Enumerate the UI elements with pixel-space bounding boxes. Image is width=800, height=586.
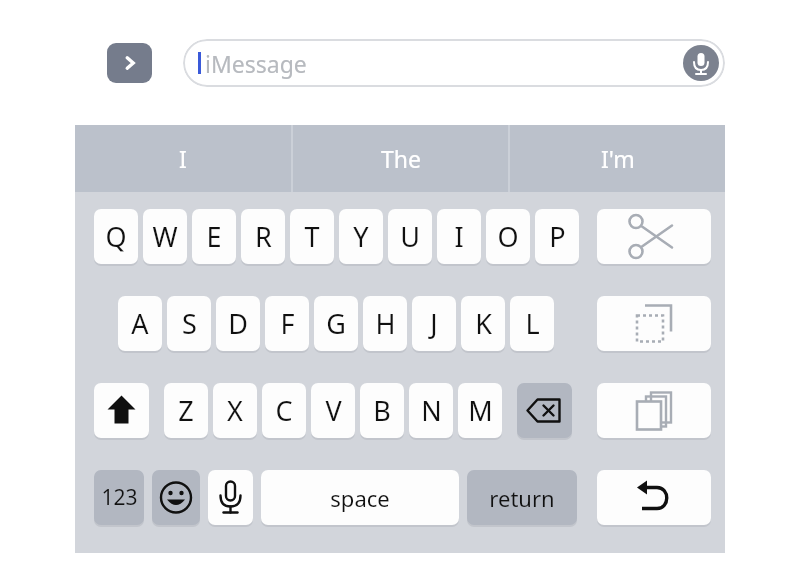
staticText: Q: [105, 218, 127, 255]
button[interactable]: B: [360, 383, 404, 441]
button[interactable]: Dictate: [208, 470, 253, 528]
staticText: I'm: [601, 143, 635, 174]
staticText: J: [430, 305, 438, 342]
button[interactable]: Send: [107, 43, 152, 83]
staticText: I: [179, 143, 187, 174]
staticText: G: [326, 305, 346, 342]
button[interactable]: The: [293, 125, 508, 192]
staticText: Z: [178, 392, 194, 429]
button[interactable]: O: [486, 209, 530, 267]
button[interactable]: L: [510, 296, 554, 354]
button[interactable]: Cut: [597, 209, 711, 267]
staticText: K: [475, 305, 492, 342]
button[interactable]: J: [412, 296, 456, 354]
button[interactable]: space: [261, 470, 459, 528]
staticText: P: [549, 218, 566, 255]
staticText: T: [304, 218, 320, 255]
button[interactable]: I: [75, 125, 291, 192]
staticText: H: [375, 305, 396, 342]
button[interactable]: H: [363, 296, 407, 354]
button[interactable]: iMessage: [183, 39, 725, 87]
staticText: D: [228, 305, 248, 342]
staticText: C: [275, 392, 293, 429]
button[interactable]: return: [467, 470, 577, 528]
button[interactable]: X: [213, 383, 257, 441]
staticText: S: [182, 305, 197, 342]
button[interactable]: E: [192, 209, 236, 267]
button[interactable]: I'm: [510, 125, 725, 192]
button[interactable]: U: [388, 209, 432, 267]
button[interactable]: I: [437, 209, 481, 267]
button[interactable]: Copy: [597, 296, 711, 354]
button[interactable]: Dictate: [683, 45, 719, 81]
staticText: A: [131, 305, 149, 342]
staticText: F: [280, 305, 295, 342]
staticText: V: [325, 392, 342, 429]
button[interactable]: T: [290, 209, 334, 267]
staticText: Y: [353, 218, 369, 255]
staticText: L: [525, 305, 540, 342]
button[interactable]: M: [458, 383, 502, 441]
button[interactable]: Undo: [597, 470, 711, 528]
button[interactable]: F: [265, 296, 309, 354]
staticText: O: [497, 218, 519, 255]
button[interactable]: 123: [94, 470, 144, 528]
button[interactable]: Q: [94, 209, 138, 267]
button[interactable]: Y: [339, 209, 383, 267]
staticText: space: [330, 483, 390, 513]
button[interactable]: A: [118, 296, 162, 354]
staticText: 123: [101, 483, 138, 512]
button[interactable]: S: [167, 296, 211, 354]
button[interactable]: D: [216, 296, 260, 354]
button[interactable]: R: [241, 209, 285, 267]
button[interactable]: W: [143, 209, 187, 267]
staticText: B: [373, 392, 391, 429]
button[interactable]: K: [461, 296, 505, 354]
staticText: The: [381, 143, 421, 174]
button[interactable]: Backspace: [517, 383, 572, 441]
button[interactable]: V: [311, 383, 355, 441]
staticText: iMessage: [205, 48, 307, 79]
button[interactable]: Emoji: [152, 470, 200, 528]
staticText: U: [400, 218, 420, 255]
button[interactable]: Z: [164, 383, 208, 441]
staticText: return: [489, 483, 555, 513]
button[interactable]: Paste: [597, 383, 711, 441]
staticText: R: [255, 218, 272, 255]
button[interactable]: P: [535, 209, 579, 267]
staticText: X: [227, 392, 243, 429]
button[interactable]: N: [409, 383, 453, 441]
button[interactable]: C: [262, 383, 306, 441]
staticText: W: [152, 218, 178, 255]
staticText: M: [468, 392, 493, 429]
staticText: N: [421, 392, 442, 429]
staticText: E: [206, 218, 222, 255]
staticText: I: [454, 218, 464, 255]
button[interactable]: G: [314, 296, 358, 354]
button[interactable]: Shift: [94, 383, 149, 441]
